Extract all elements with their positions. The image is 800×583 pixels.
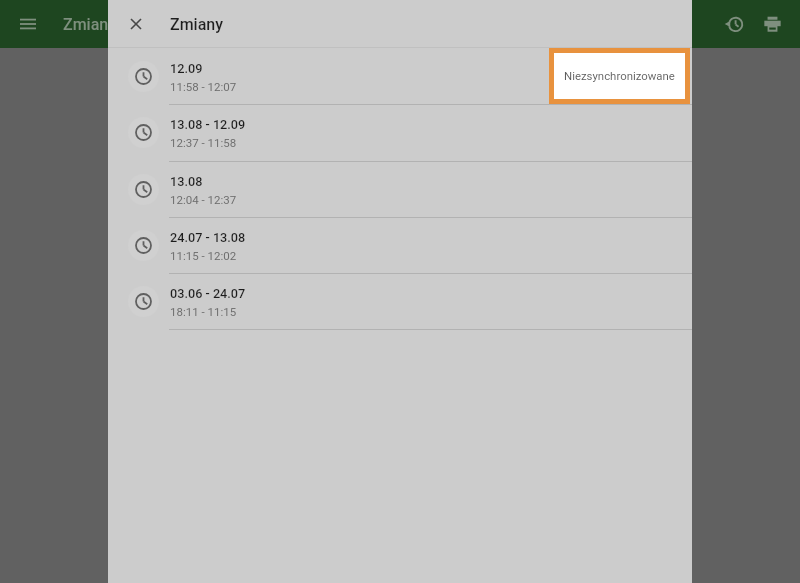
button[interactable]: 24.07 - 13.08 (108, 217, 692, 273)
staticText: 13.08 (170, 174, 203, 189)
staticText: 11:58 - 12:07 (170, 80, 237, 93)
button[interactable]: 13.08 (108, 161, 692, 217)
button[interactable]: Print (748, 0, 796, 48)
staticText: 12:04 - 12:37 (170, 193, 237, 206)
button[interactable]: Close (112, 0, 160, 48)
button[interactable]: 12.09 (108, 48, 692, 104)
staticText: 13.08 - 12.09 (170, 117, 246, 132)
button[interactable]: Niezsynchronizowane (554, 53, 685, 99)
button[interactable]: 13.08 - 12.09 (108, 104, 692, 160)
staticText: Niezsynchronizowane (564, 69, 675, 82)
staticText: 18:11 - 11:15 (170, 305, 237, 318)
staticText: 12:37 - 11:58 (170, 136, 237, 149)
staticText: Zmiany (63, 15, 117, 34)
button[interactable]: 03.06 - 24.07 (108, 273, 692, 329)
staticText: Zmiany (170, 15, 224, 34)
staticText: 11:15 - 12:02 (170, 249, 237, 262)
staticText: 03.06 - 24.07 (170, 286, 246, 301)
button[interactable]: Open navigation drawer (4, 0, 52, 48)
staticText: 12.09 (170, 61, 203, 76)
staticText: 24.07 - 13.08 (170, 230, 246, 245)
button[interactable]: History (710, 0, 758, 48)
